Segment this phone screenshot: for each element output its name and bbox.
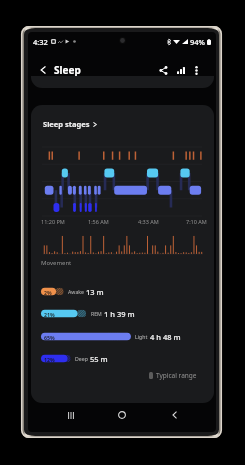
staticText: REM — [91, 310, 102, 317]
staticText: Sleep stages — [43, 119, 90, 129]
button[interactable]: Recent apps — [62, 407, 80, 423]
staticText: Movement — [41, 259, 72, 267]
staticText: 4:33 AM — [138, 218, 159, 225]
staticText: 11:20 PM — [41, 218, 65, 225]
staticText: Typical range — [156, 371, 197, 380]
button[interactable]: Back — [36, 63, 50, 77]
button[interactable]: Charts — [173, 62, 189, 78]
button[interactable]: 2% — [41, 287, 206, 296]
staticText: Awake — [68, 288, 84, 295]
staticText: 4 h 48 m — [150, 332, 181, 341]
staticText: 1:56 AM — [88, 218, 109, 225]
button[interactable]: Back — [165, 407, 183, 423]
staticText: 7:10 AM — [186, 218, 207, 225]
button[interactable]: Share — [155, 62, 171, 78]
staticText: 13 m — [86, 287, 104, 296]
button[interactable]: 12% — [41, 354, 206, 363]
button[interactable]: Sleep stages — [43, 119, 97, 129]
staticText: 1 h 39 m — [104, 309, 135, 318]
staticText: 21% — [44, 311, 55, 318]
button[interactable]: 21% — [41, 309, 206, 318]
button[interactable]: Home — [113, 407, 131, 423]
staticText: Light — [135, 333, 148, 340]
staticText: 12% — [44, 356, 55, 363]
staticText: 94% — [190, 37, 205, 47]
staticText: 2% — [44, 289, 52, 296]
button[interactable]: 65% — [41, 332, 206, 341]
staticText: 4:32 — [33, 37, 48, 47]
staticText: Sleep — [54, 63, 81, 77]
staticText: 65% — [44, 334, 55, 341]
staticText: Deep — [75, 355, 88, 362]
staticText: 55 m — [90, 354, 108, 363]
button[interactable]: More options — [189, 63, 203, 77]
